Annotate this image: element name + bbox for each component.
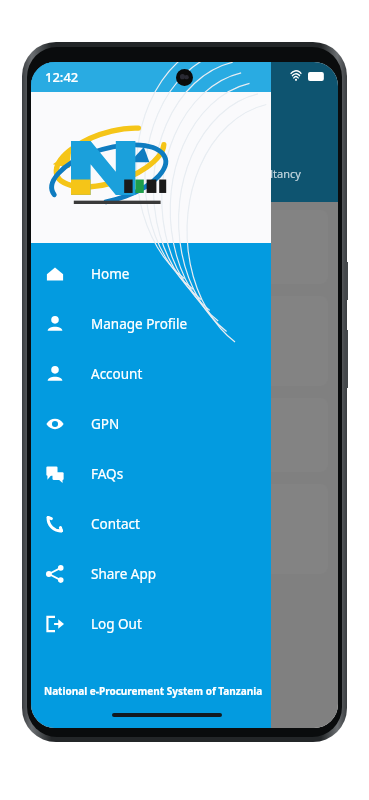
button[interactable]: Contact: [31, 499, 271, 549]
staticText: Closing Today: [191, 240, 263, 255]
staticText: Manage Profile: [91, 315, 188, 333]
button[interactable]: Awards: [41, 484, 328, 574]
staticText: Home: [91, 265, 130, 283]
staticText: GPN: [91, 415, 120, 433]
button[interactable]: Log Out: [31, 599, 271, 649]
staticText: 12:42: [45, 68, 79, 86]
staticText: Open Tenders: [39, 166, 112, 181]
button[interactable]: GPN: [31, 399, 271, 449]
button[interactable]: Closing Today: [41, 210, 328, 284]
staticText: Closing Today: [191, 334, 263, 349]
button[interactable]: Closing Today: [41, 296, 328, 386]
button[interactable]: Account: [31, 349, 271, 399]
staticText: National e-Procurement System of Tanzani…: [44, 684, 263, 698]
staticText: FAQs: [91, 465, 124, 483]
staticText: Log Out: [91, 615, 142, 633]
staticText: Emergency: [134, 166, 192, 181]
staticText: Account: [91, 365, 143, 383]
button[interactable]: Awards: [41, 398, 328, 472]
button[interactable]: Share App: [31, 549, 271, 599]
button[interactable]: Manage Profile: [31, 299, 271, 349]
button[interactable]: FAQs: [31, 449, 271, 499]
staticText: Contact: [91, 515, 140, 533]
staticText: Non-consultancy: [214, 166, 301, 181]
button[interactable]: Home: [31, 249, 271, 299]
staticText: Share App: [91, 565, 156, 583]
